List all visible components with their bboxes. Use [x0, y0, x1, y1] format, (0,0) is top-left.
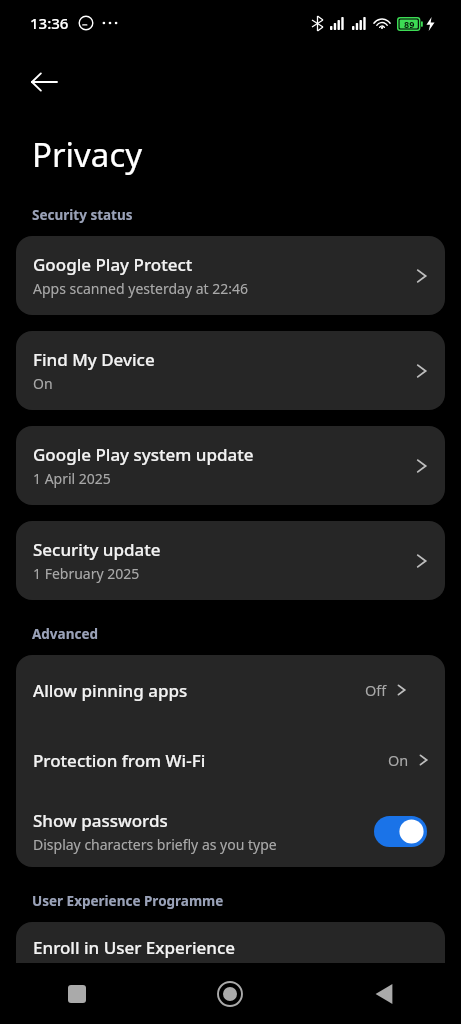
- button[interactable]: Back: [20, 58, 68, 106]
- button[interactable]: Home: [207, 971, 253, 1017]
- staticText: Off: [365, 680, 387, 700]
- staticText: Allow pinning apps: [33, 679, 188, 702]
- staticText: 1 April 2025: [33, 469, 111, 488]
- staticText: Show passwords: [33, 809, 168, 832]
- staticText: Security status: [32, 206, 133, 224]
- staticText: Security update: [33, 538, 161, 561]
- staticText: Advanced: [32, 625, 99, 643]
- staticText: On: [33, 374, 53, 393]
- staticText: Find My Device: [33, 348, 155, 371]
- staticText: Privacy: [32, 132, 143, 177]
- button[interactable]: Enroll in User Experience: [16, 922, 445, 992]
- staticText: Display characters briefly as you type: [33, 835, 277, 854]
- button[interactable]: Allow pinning apps: [16, 655, 445, 725]
- staticText: On: [388, 750, 409, 770]
- staticText: 1 February 2025: [33, 564, 140, 583]
- staticText: User Experience Programme: [32, 892, 224, 910]
- button[interactable]: Back: [361, 971, 407, 1017]
- staticText: 89: [404, 18, 415, 30]
- staticText: Protection from Wi-Fi probe requests: [33, 749, 210, 772]
- button[interactable]: Security update: [16, 521, 445, 600]
- staticText: Apps scanned yesterday at 22:46: [33, 279, 249, 298]
- button[interactable]: [374, 816, 427, 847]
- button[interactable]: Protection from Wi-Fi probe requests: [16, 725, 445, 795]
- staticText: Enroll in User Experience: [33, 936, 236, 959]
- button[interactable]: Recents: [54, 971, 100, 1017]
- staticText: Google Play system update: [33, 443, 254, 466]
- button[interactable]: Find My Device: [16, 331, 445, 410]
- staticText: 13:36: [30, 13, 69, 33]
- button[interactable]: Show passwords: [16, 795, 445, 867]
- button[interactable]: Google Play Protect: [16, 236, 445, 315]
- button[interactable]: Google Play system update: [16, 426, 445, 505]
- staticText: Google Play Protect: [33, 253, 193, 276]
